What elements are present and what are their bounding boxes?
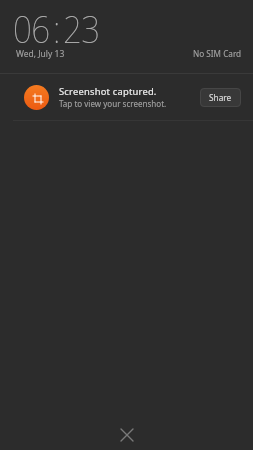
- button[interactable]: Share: [200, 88, 241, 107]
- staticText: Tap to view your screenshot.: [59, 98, 167, 109]
- staticText: :: [53, 5, 60, 54]
- staticText: Wed, July 13: [16, 48, 65, 60]
- staticText: Share: [209, 92, 232, 103]
- staticText: No SIM Card: [193, 48, 242, 59]
- button[interactable]: Clear all notifications: [110, 418, 144, 450]
- staticText: Screenshot captured.: [59, 85, 157, 98]
- button[interactable]: Screenshot captured.: [0, 74, 253, 120]
- staticText: 06: [13, 5, 50, 54]
- staticText: 23: [63, 5, 100, 54]
